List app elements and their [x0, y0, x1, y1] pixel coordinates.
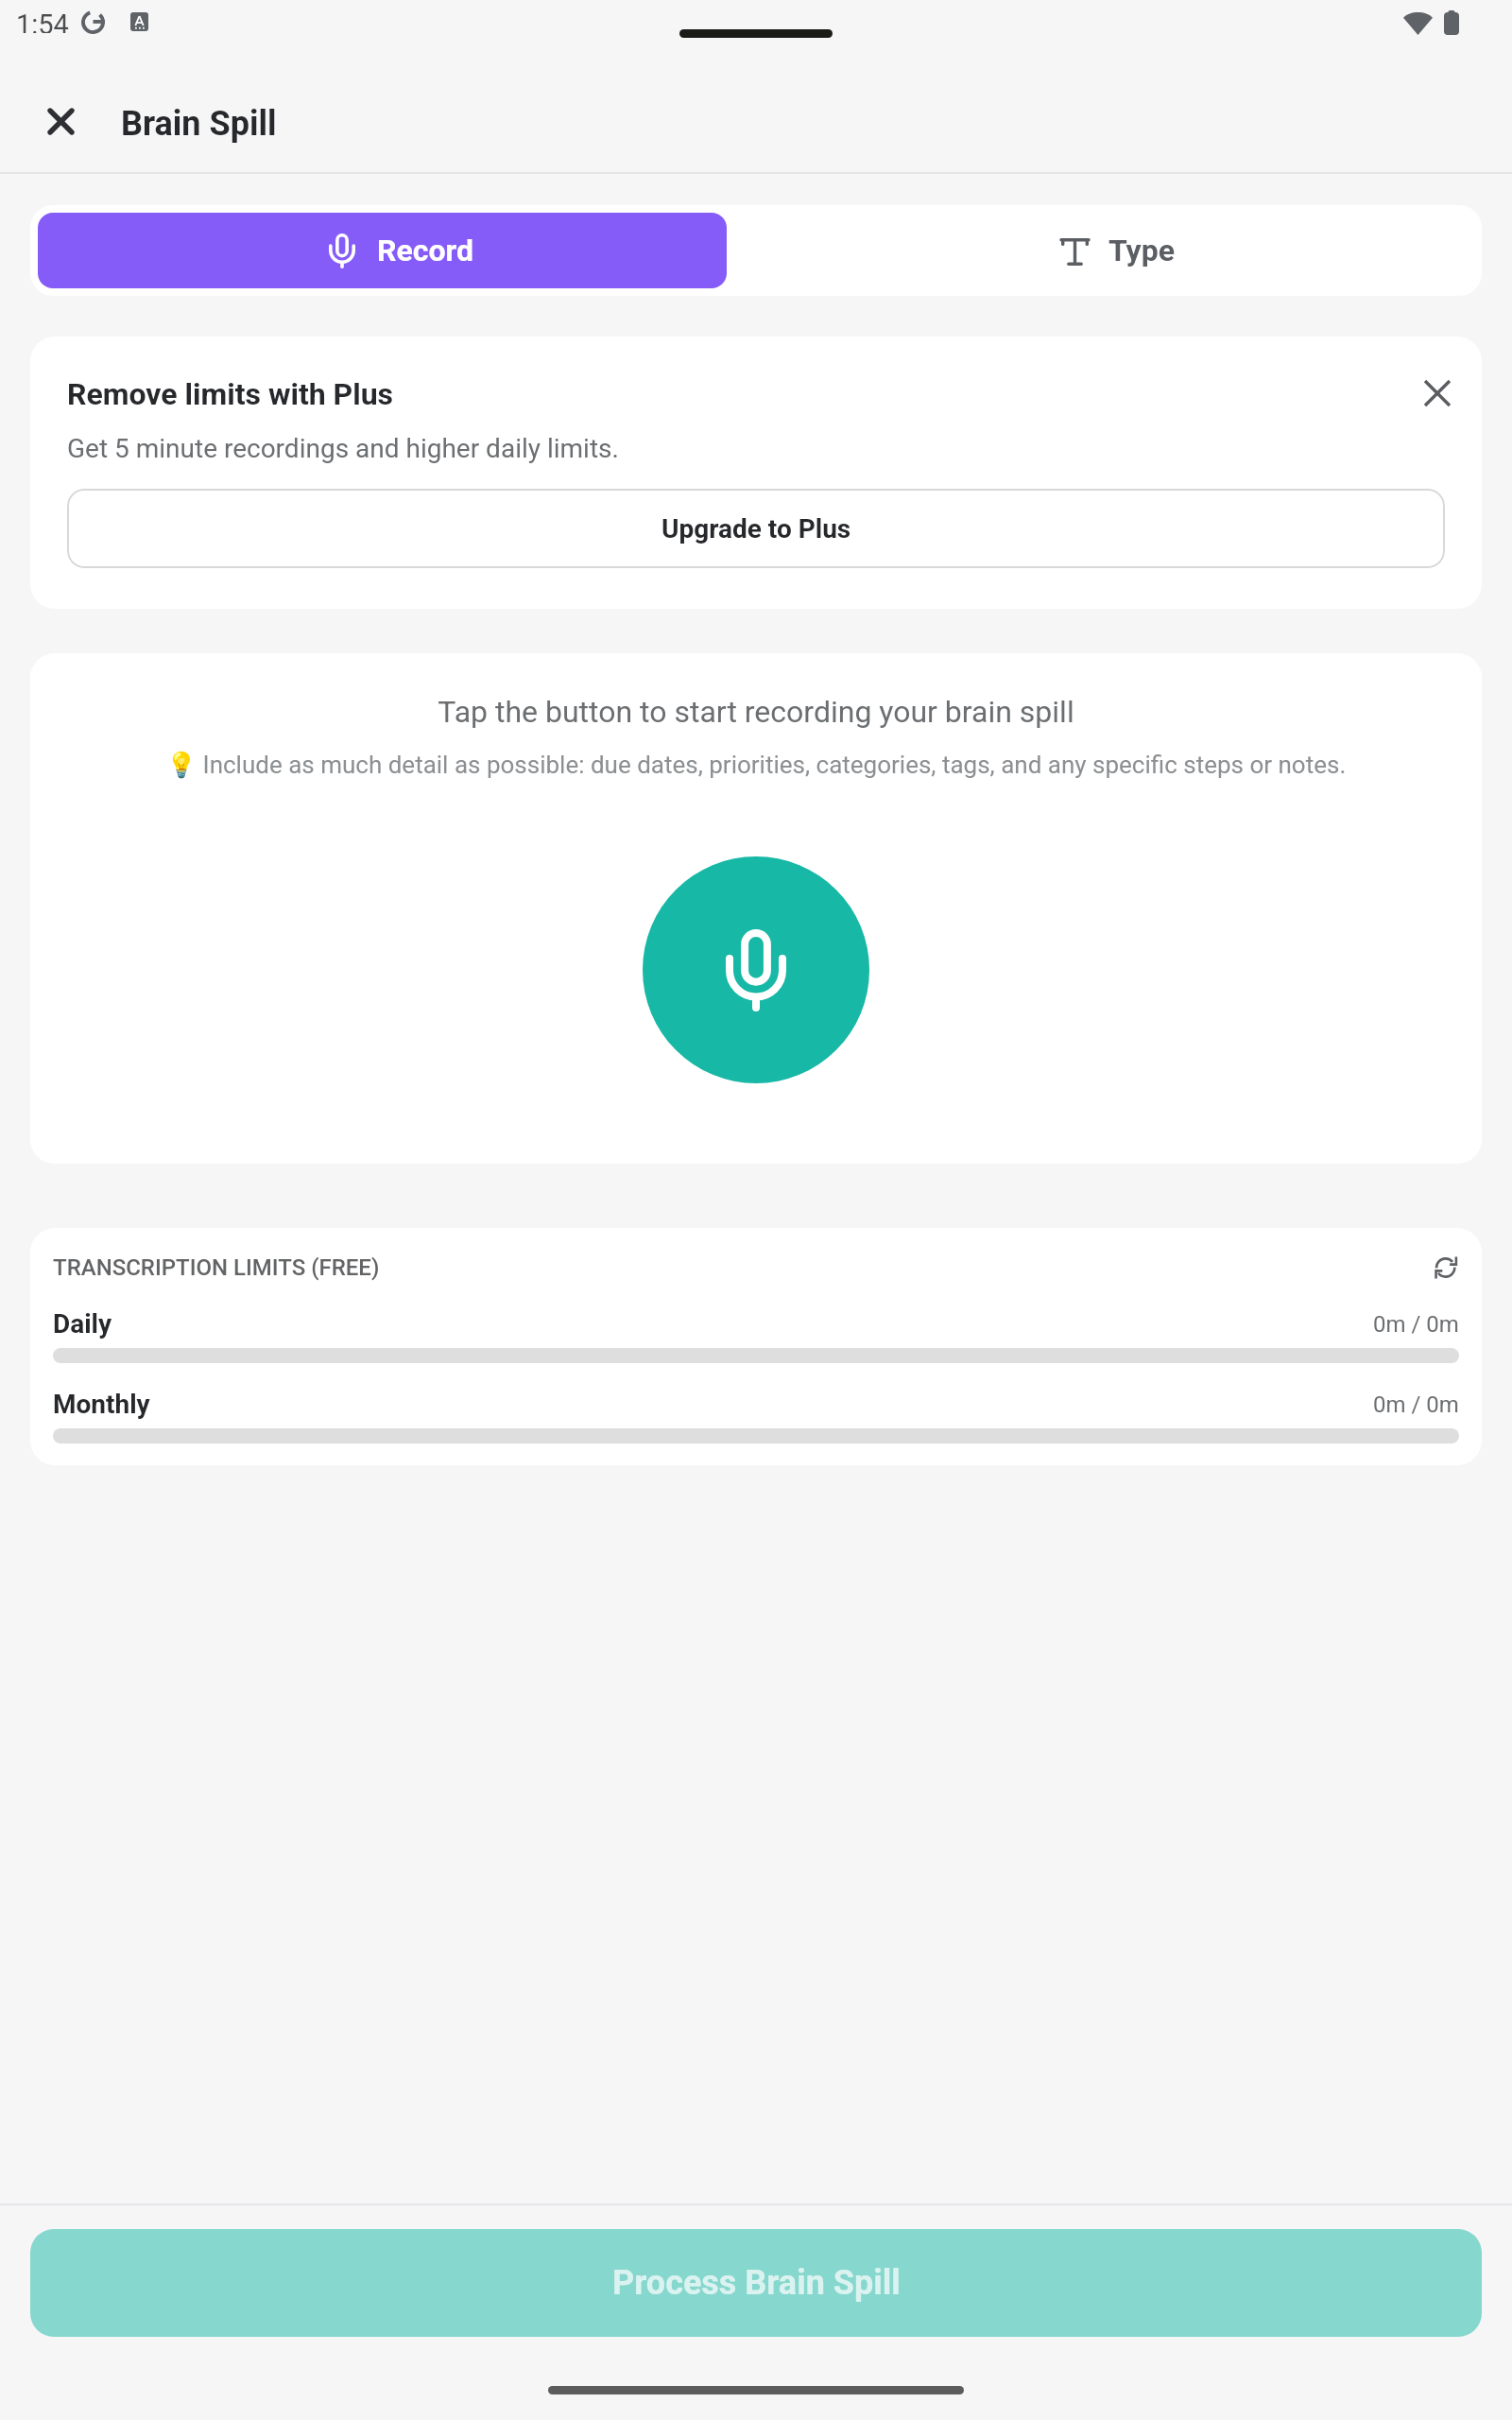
staticText: Tap the button to start recording your b…	[30, 694, 1482, 730]
staticText: Brain Spill	[121, 104, 277, 144]
staticText: 0m / 0m	[1373, 1391, 1459, 1418]
staticText: 1:54	[16, 9, 69, 33]
staticText: Process Brain Spill	[612, 2263, 901, 2303]
button[interactable]: Process Brain Spill	[30, 2229, 1482, 2337]
staticText: Record	[377, 233, 473, 268]
staticText: TRANSCRIPTION LIMITS (FREE)	[53, 1254, 1435, 1281]
button[interactable]: Type	[756, 205, 1474, 296]
button[interactable]: Start recording	[643, 856, 869, 1083]
button[interactable]: Record	[38, 205, 756, 296]
staticText: Remove limits with Plus	[67, 376, 1401, 412]
button[interactable]: Dismiss	[1416, 372, 1459, 415]
staticText: Daily	[53, 1308, 1373, 1340]
button[interactable]: Upgrade to Plus	[67, 489, 1445, 568]
staticText: Monthly	[53, 1389, 1373, 1420]
staticText: 0m / 0m	[1373, 1311, 1459, 1338]
staticText: 💡 Include as much detail as possible: du…	[30, 751, 1482, 779]
staticText: Upgrade to Plus	[661, 513, 851, 544]
staticText: Type	[1108, 233, 1175, 268]
button[interactable]: Refresh	[1435, 1255, 1459, 1280]
staticText: Get 5 minute recordings and higher daily…	[67, 433, 619, 464]
button[interactable]: Close	[0, 76, 121, 172]
